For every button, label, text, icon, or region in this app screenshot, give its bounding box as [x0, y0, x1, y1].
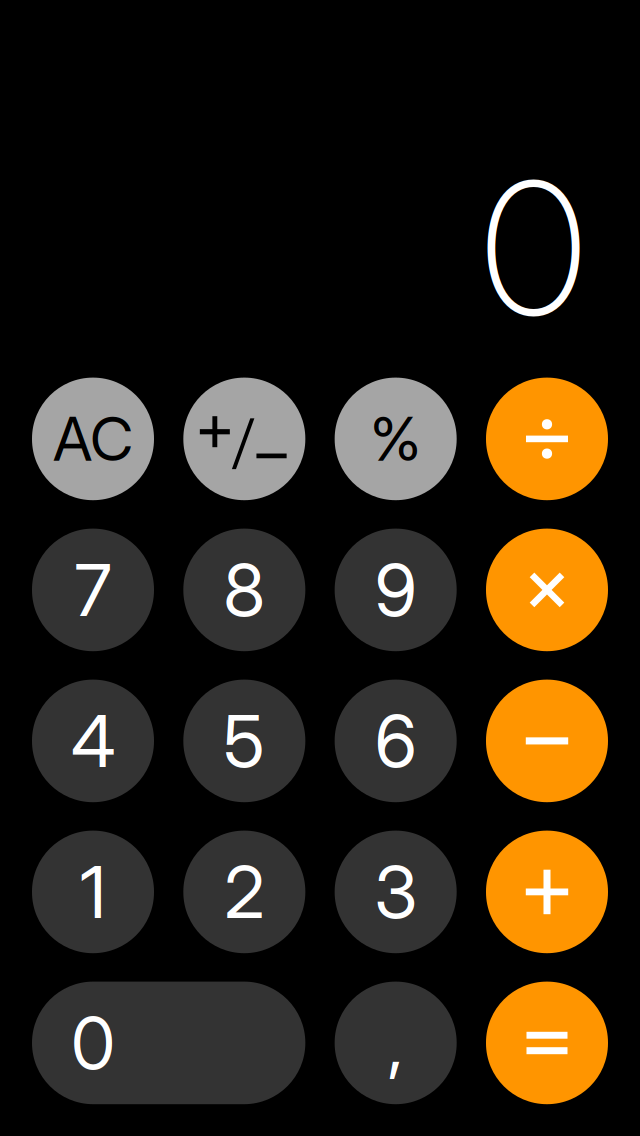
staticText: 2: [224, 848, 264, 935]
staticText: ,: [388, 999, 404, 1086]
staticText: 0: [481, 138, 586, 359]
button[interactable]: 2: [183, 831, 305, 953]
staticText: 3: [374, 848, 417, 935]
button[interactable]: 1: [32, 831, 154, 953]
staticText: 8: [223, 546, 265, 633]
staticText: 0: [71, 999, 115, 1086]
button[interactable]: AC: [32, 378, 154, 500]
button[interactable]: Divide: [486, 378, 608, 500]
staticText: 6: [375, 697, 417, 784]
button[interactable]: Equals: [486, 982, 608, 1104]
staticText: 9: [375, 546, 417, 633]
staticText: 7: [74, 546, 111, 633]
button[interactable]: %: [335, 378, 457, 500]
button[interactable]: ,: [335, 982, 457, 1104]
button[interactable]: 3: [335, 831, 457, 953]
button[interactable]: 8: [183, 529, 305, 651]
staticText: 5: [223, 697, 265, 784]
button[interactable]: Add: [486, 831, 608, 953]
button[interactable]: 4: [32, 680, 154, 802]
button[interactable]: 7: [32, 529, 154, 651]
button[interactable]: Toggle sign: [183, 378, 305, 500]
button[interactable]: 6: [335, 680, 457, 802]
button[interactable]: 0: [32, 982, 305, 1104]
staticText: AC: [53, 403, 133, 475]
button[interactable]: Multiply: [486, 529, 608, 651]
button[interactable]: 5: [183, 680, 305, 802]
staticText: %: [370, 403, 421, 475]
button[interactable]: Subtract: [486, 680, 608, 802]
button[interactable]: 9: [335, 529, 457, 651]
staticText: 4: [71, 697, 115, 784]
staticText: 1: [80, 848, 106, 935]
